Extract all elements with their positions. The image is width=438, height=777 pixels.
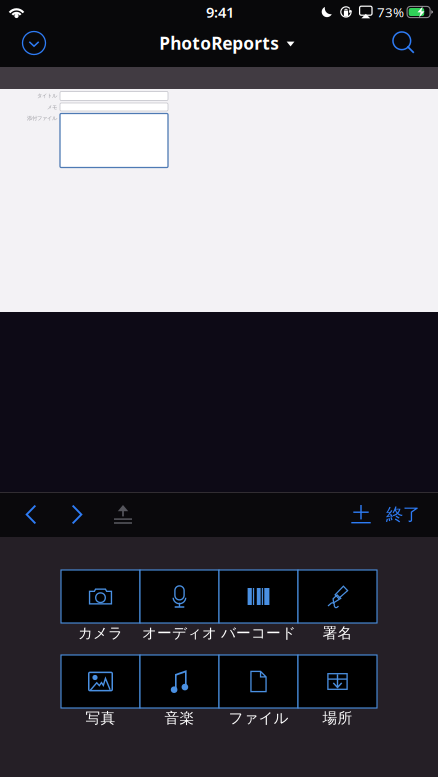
staticText: 添付ファイル xyxy=(27,115,57,122)
staticText: メモ xyxy=(47,104,57,111)
staticText: ファイル xyxy=(228,709,288,727)
button[interactable]: Search xyxy=(382,24,426,62)
button[interactable]: ファイル xyxy=(219,655,298,727)
button[interactable]: Back xyxy=(8,492,54,537)
button[interactable]: 場所 xyxy=(298,655,377,727)
button[interactable]: 終了 xyxy=(384,492,428,537)
button[interactable]: 写真 xyxy=(61,655,140,727)
button[interactable]: オーディオ xyxy=(140,570,219,642)
button[interactable]: Collapse xyxy=(12,24,56,62)
staticText: 署名 xyxy=(322,624,352,642)
staticText: バーコード xyxy=(221,624,296,642)
staticText: 73% xyxy=(377,3,404,21)
staticText: タイトル xyxy=(37,92,57,99)
button[interactable]: PhotoReports xyxy=(151,24,287,62)
staticText: PhotoReports xyxy=(159,31,279,54)
button[interactable]: Share xyxy=(100,492,146,537)
staticText: カメラ xyxy=(78,624,123,642)
button[interactable]: Add xyxy=(338,492,384,537)
button[interactable]: バーコード xyxy=(219,570,298,642)
staticText: 9:41 xyxy=(206,2,234,22)
button[interactable]: カメラ xyxy=(61,570,140,642)
button[interactable]: 音楽 xyxy=(140,655,219,727)
button[interactable]: 署名 xyxy=(298,570,377,642)
button[interactable]: Forward xyxy=(54,492,100,537)
staticText: オーディオ xyxy=(142,624,217,642)
staticText: 終了 xyxy=(386,504,420,525)
staticText: 写真 xyxy=(85,709,115,727)
staticText: 場所 xyxy=(322,709,352,727)
staticText: 音楽 xyxy=(164,709,194,727)
